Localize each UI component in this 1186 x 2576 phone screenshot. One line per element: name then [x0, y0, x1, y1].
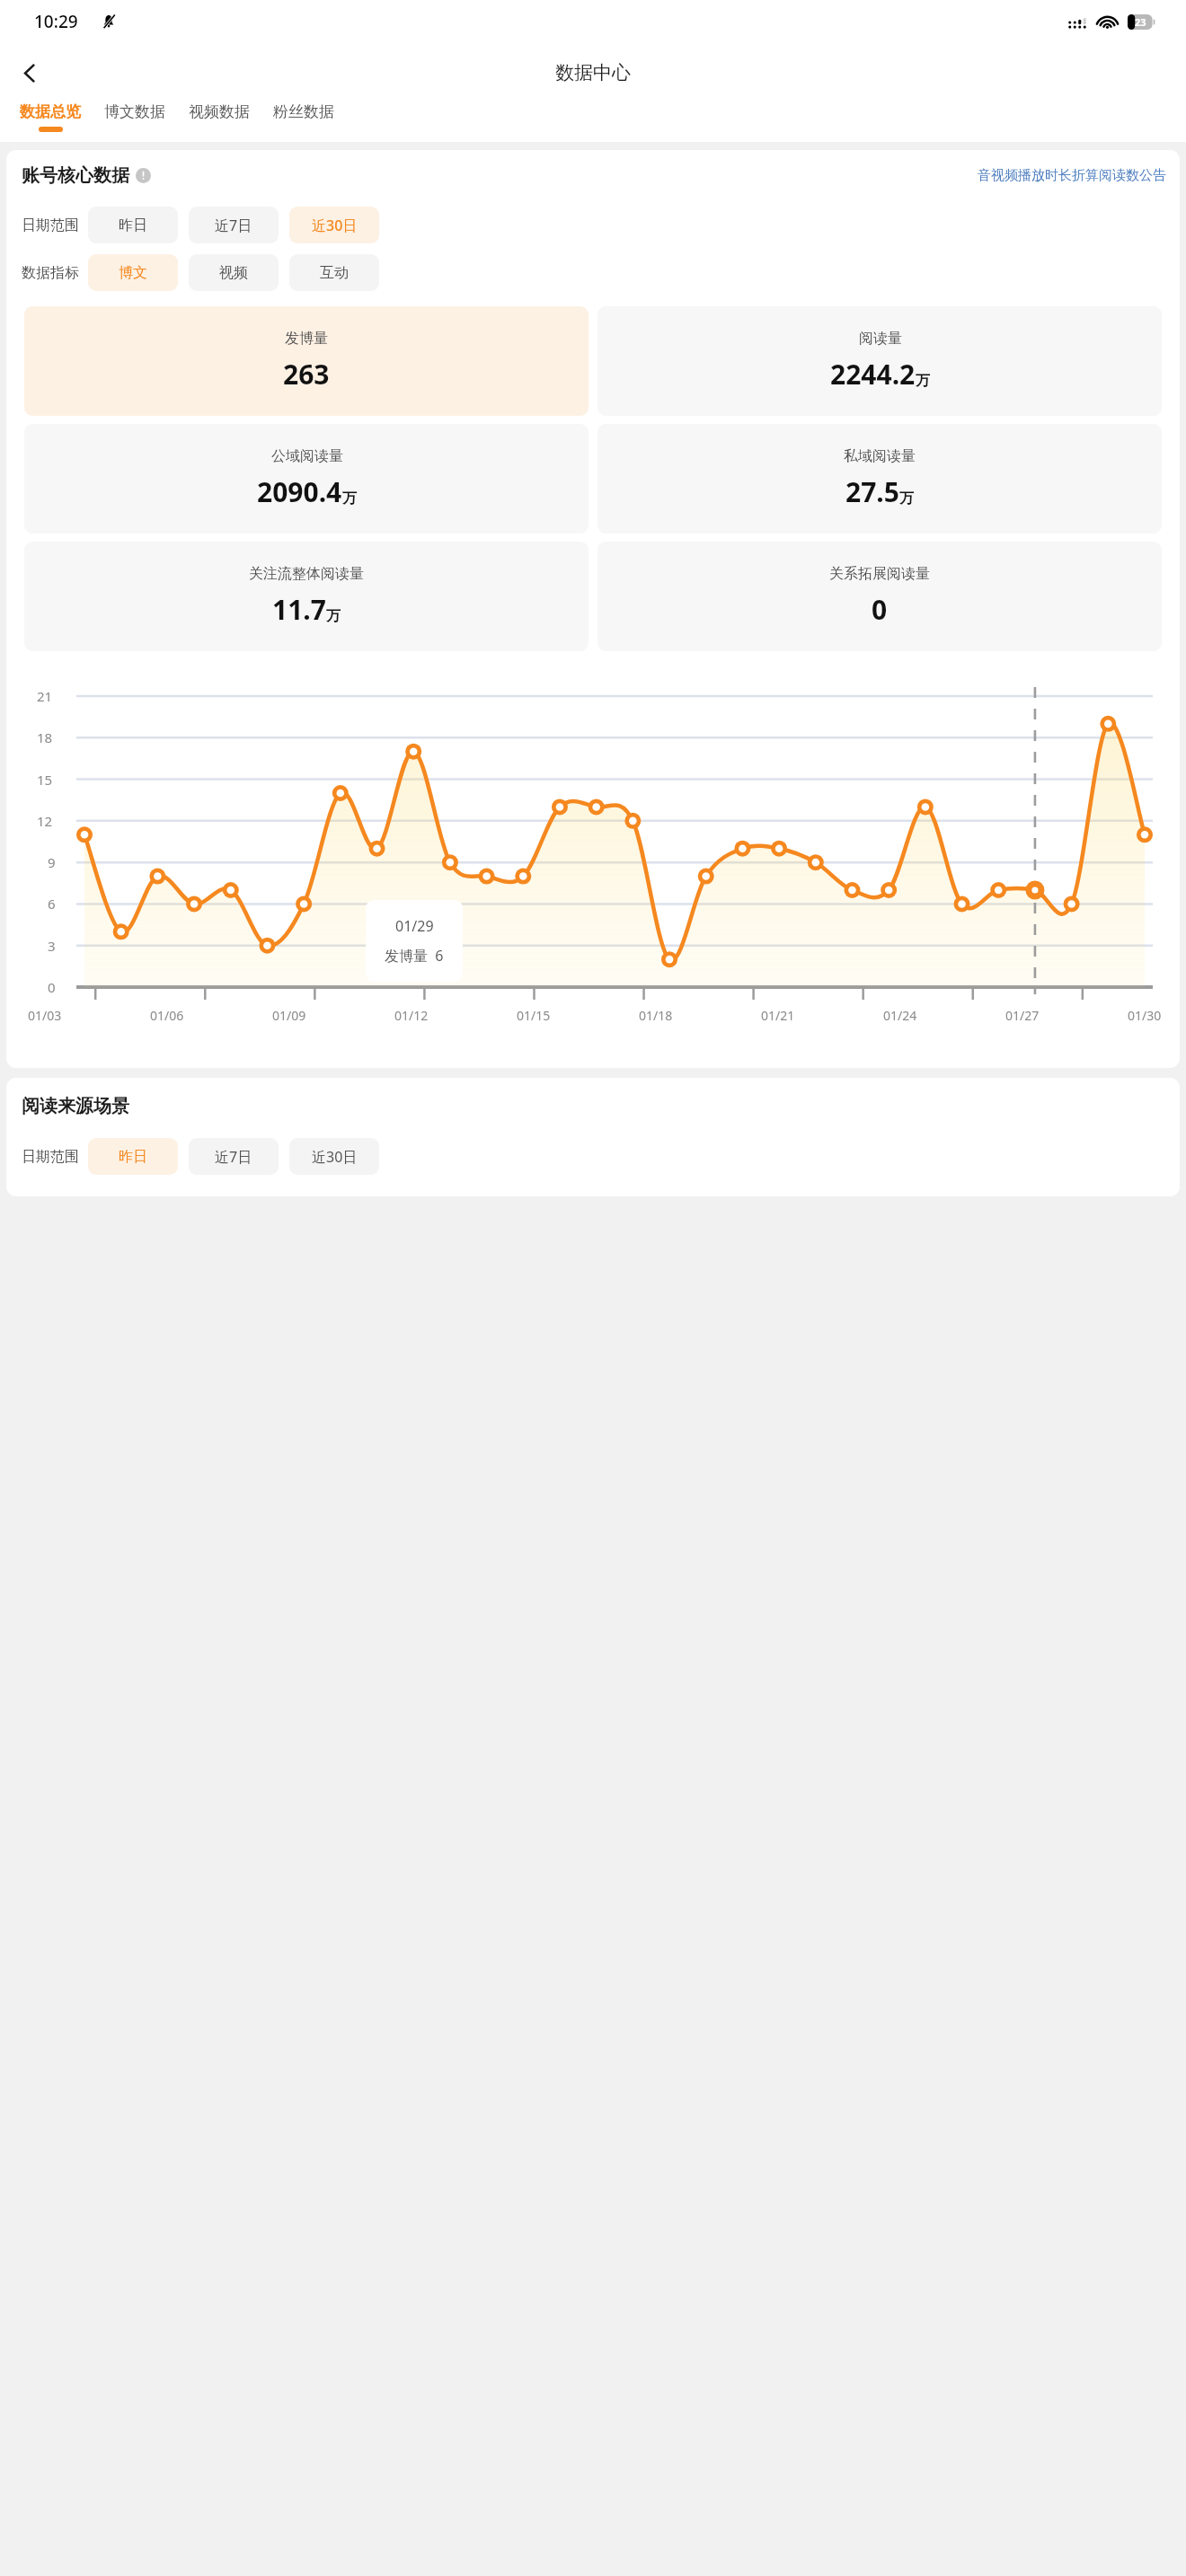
- staticText: 01/06: [150, 1007, 184, 1024]
- staticText: 日期范围: [22, 1148, 79, 1166]
- button[interactable]: 音视频播放时长折算阅读数公告: [978, 167, 1166, 184]
- staticText: 01/30: [1128, 1007, 1162, 1024]
- staticText: 万: [326, 607, 341, 625]
- staticText: 关注流整体阅读量: [249, 565, 364, 583]
- staticText: 11.7: [272, 591, 326, 628]
- staticText: 01/18: [639, 1007, 673, 1024]
- button[interactable]: 私域阅读量: [597, 424, 1162, 534]
- button[interactable]: 近7日: [189, 207, 279, 243]
- staticText: 数据总览: [20, 102, 81, 121]
- staticText: 27.5: [845, 473, 899, 510]
- button[interactable]: 近30日: [289, 207, 379, 243]
- staticText: 9: [48, 853, 56, 871]
- button[interactable]: 昨日: [88, 207, 178, 243]
- staticText: 视频: [219, 264, 248, 282]
- button[interactable]: 关系拓展阅读量: [597, 542, 1162, 651]
- staticText: 互动: [320, 264, 349, 282]
- staticText: 近7日: [215, 1147, 252, 1167]
- staticText: 3: [48, 937, 56, 955]
- staticText: 万: [916, 372, 930, 390]
- staticText: 01/24: [883, 1007, 917, 1024]
- button[interactable]: 公域阅读量: [24, 424, 589, 534]
- button[interactable]: 阅读量: [597, 306, 1162, 416]
- staticText: 公域阅读量: [271, 447, 343, 465]
- staticText: 10:29: [34, 10, 78, 33]
- button[interactable]: 视频: [189, 254, 279, 291]
- staticText: 263: [283, 356, 330, 393]
- staticText: 01/15: [517, 1007, 551, 1024]
- staticText: 15: [37, 771, 53, 789]
- staticText: 数据中心: [555, 61, 631, 84]
- button[interactable]: 视频数据: [177, 102, 261, 127]
- staticText: 账号核心数据: [22, 164, 129, 187]
- button[interactable]: 数据总览: [8, 102, 93, 132]
- staticText: 关系拓展阅读量: [829, 565, 930, 583]
- button[interactable]: 关注流整体阅读量: [24, 542, 589, 651]
- button[interactable]: 博文: [88, 254, 178, 291]
- button[interactable]: 博文数据: [93, 102, 177, 127]
- staticText: 视频数据: [189, 102, 250, 121]
- staticText: 18: [37, 728, 53, 746]
- button[interactable]: 昨日: [88, 1138, 178, 1175]
- staticText: 数据指标: [22, 264, 79, 282]
- staticText: 2244.2: [830, 356, 916, 393]
- staticText: 近7日: [215, 216, 252, 235]
- staticText: 01/12: [394, 1007, 429, 1024]
- staticText: 私域阅读量: [844, 447, 916, 465]
- button[interactable]: 粉丝数据: [261, 102, 346, 127]
- button[interactable]: Back: [7, 50, 52, 95]
- staticText: 阅读来源场景: [22, 1095, 129, 1117]
- staticText: 2090.4: [257, 473, 342, 510]
- staticText: 0: [48, 978, 56, 996]
- staticText: 发博量 6: [385, 946, 444, 966]
- staticText: 23: [1135, 15, 1146, 29]
- button[interactable]: 近30日: [289, 1138, 379, 1175]
- staticText: 01/27: [1005, 1007, 1040, 1024]
- staticText: 发博量: [285, 330, 328, 348]
- button[interactable]: 近7日: [189, 1138, 279, 1175]
- staticText: 万: [899, 490, 914, 507]
- staticText: 昨日: [119, 216, 147, 234]
- staticText: 6: [48, 895, 56, 913]
- staticText: 博文数据: [104, 102, 165, 121]
- button[interactable]: Info: [136, 168, 151, 183]
- staticText: 21: [37, 687, 53, 705]
- button[interactable]: 互动: [289, 254, 379, 291]
- staticText: 01/09: [272, 1007, 306, 1024]
- staticText: 01/03: [28, 1007, 62, 1024]
- staticText: 0: [872, 591, 888, 628]
- staticText: 近30日: [312, 1147, 358, 1167]
- staticText: 万: [342, 490, 357, 507]
- staticText: 粉丝数据: [273, 102, 334, 121]
- staticText: 12: [37, 812, 53, 830]
- staticText: 近30日: [312, 216, 358, 235]
- staticText: 日期范围: [22, 216, 79, 234]
- staticText: 博文: [119, 264, 147, 282]
- staticText: 昨日: [119, 1148, 147, 1166]
- button[interactable]: 发博量: [24, 306, 589, 416]
- staticText: 01/29: [395, 916, 434, 936]
- staticText: 阅读量: [859, 330, 902, 348]
- staticText: 01/21: [761, 1007, 795, 1024]
